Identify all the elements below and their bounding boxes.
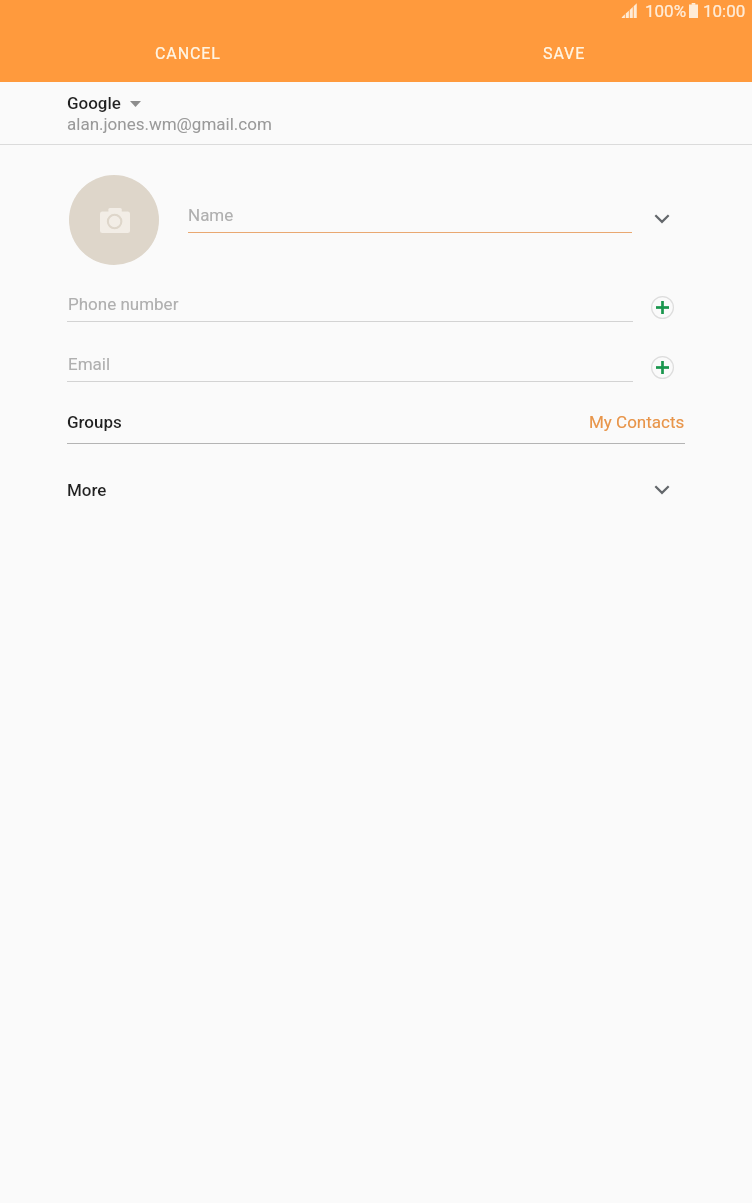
staticText: More [67,480,107,500]
button[interactable]: Add contact photo [69,175,159,265]
staticText: 10:00 [703,1,746,21]
button[interactable]: Phone number [67,285,633,322]
button[interactable]: Add Email [638,343,686,391]
button[interactable]: Expand more [638,467,686,513]
button[interactable]: Name [188,196,632,233]
staticText: Email [68,354,111,374]
staticText: CANCEL [155,44,221,63]
button[interactable]: Google [0,82,752,144]
button[interactable]: Email [67,345,633,382]
button[interactable]: Add Phone number [638,283,686,331]
staticText: SAVE [543,44,586,63]
staticText: Groups [67,412,122,432]
staticText: Google [67,93,121,113]
button[interactable]: More [0,466,752,512]
button[interactable]: SAVE [376,25,752,82]
staticText: 100% [645,1,687,21]
staticText: alan.jones.wm@gmail.com [67,114,272,134]
staticText: Name [188,205,234,225]
staticText: My Contacts [589,412,685,432]
button[interactable]: CANCEL [0,25,376,82]
staticText: Phone number [68,294,179,314]
button[interactable]: Expand name [638,195,686,243]
button[interactable]: Groups [0,405,752,443]
